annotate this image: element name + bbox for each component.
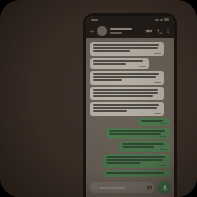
button[interactable] (119, 141, 170, 152)
button[interactable]: Contact photo (97, 26, 107, 36)
button[interactable]: More options (164, 27, 172, 35)
button[interactable]: Back (88, 27, 96, 35)
button[interactable] (106, 128, 170, 139)
button[interactable] (110, 28, 144, 34)
button[interactable]: Record voice message (158, 181, 171, 194)
button[interactable] (103, 170, 170, 177)
button[interactable] (90, 87, 164, 100)
button[interactable]: Voice call (154, 26, 164, 36)
button[interactable] (89, 182, 155, 193)
button[interactable] (90, 102, 164, 116)
button[interactable]: Video call (144, 26, 154, 36)
button[interactable] (138, 118, 170, 126)
button[interactable] (90, 42, 164, 56)
button[interactable] (90, 58, 149, 69)
button[interactable] (90, 71, 164, 85)
button[interactable] (103, 154, 170, 168)
